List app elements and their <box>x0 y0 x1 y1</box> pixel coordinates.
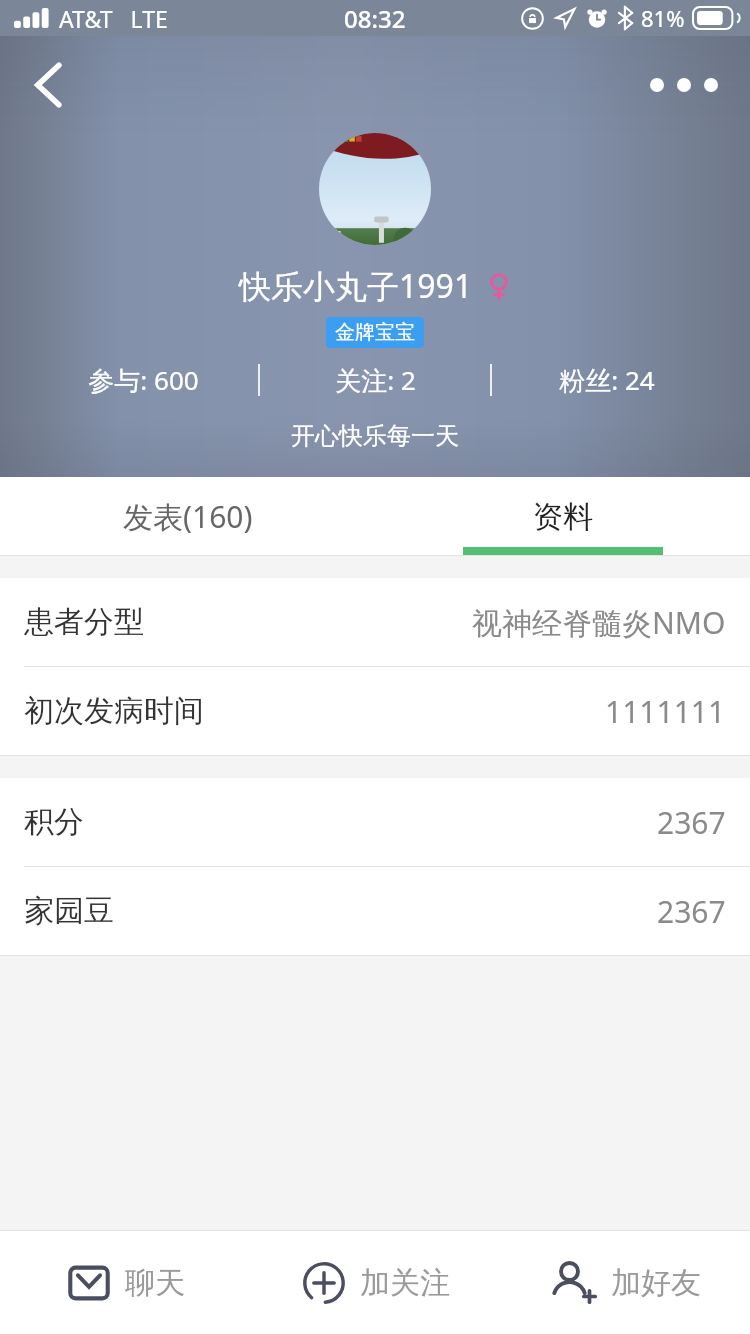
button[interactable]: 金牌宝宝 <box>326 317 424 348</box>
staticText: 患者分型 <box>24 603 144 641</box>
staticText: 视神经脊髓炎NMO <box>472 602 726 643</box>
staticText: 关注: 2 <box>335 362 416 398</box>
staticText: 资料 <box>533 498 593 536</box>
button[interactable]: 聊天 <box>0 1231 250 1334</box>
staticText: 1111111 <box>605 691 726 732</box>
button[interactable]: 发表(160) <box>0 477 375 556</box>
button[interactable]: 积分 <box>0 778 750 866</box>
staticText: 金牌宝宝 <box>335 320 415 345</box>
button[interactable]: Profile photo <box>319 133 431 245</box>
staticText: 初次发病时间 <box>24 692 204 730</box>
staticText: AT&T LTE <box>59 3 168 34</box>
staticText: 加关注 <box>360 1264 450 1302</box>
staticText: 加好友 <box>611 1264 701 1302</box>
staticText: 发表(160) <box>123 496 253 537</box>
button[interactable]: 患者分型 <box>0 578 750 666</box>
button[interactable]: Back <box>16 52 82 118</box>
staticText: 2367 <box>657 891 726 932</box>
button[interactable]: More options <box>632 56 736 114</box>
button[interactable]: 初次发病时间 <box>0 667 750 755</box>
button[interactable]: 参与: 600 <box>28 362 258 398</box>
staticText: 家园豆 <box>24 892 114 930</box>
staticText: 开心快乐每一天 <box>291 421 459 451</box>
button[interactable]: 家园豆 <box>0 867 750 955</box>
button[interactable]: 加好友 <box>500 1231 750 1334</box>
staticText: 参与: 600 <box>88 362 199 398</box>
staticText: 81% <box>641 3 685 33</box>
button[interactable]: 粉丝: 24 <box>492 362 722 398</box>
button[interactable]: 关注: 2 <box>260 362 490 398</box>
button[interactable]: 加关注 <box>250 1231 500 1334</box>
staticText: 08:32 <box>344 2 406 35</box>
staticText: 快乐小丸子1991 <box>239 264 473 308</box>
staticText: 粉丝: 24 <box>559 362 655 398</box>
button[interactable]: 资料 <box>375 477 750 556</box>
staticText: 积分 <box>24 803 84 841</box>
staticText: 2367 <box>657 802 726 843</box>
staticText: 聊天 <box>125 1264 185 1302</box>
